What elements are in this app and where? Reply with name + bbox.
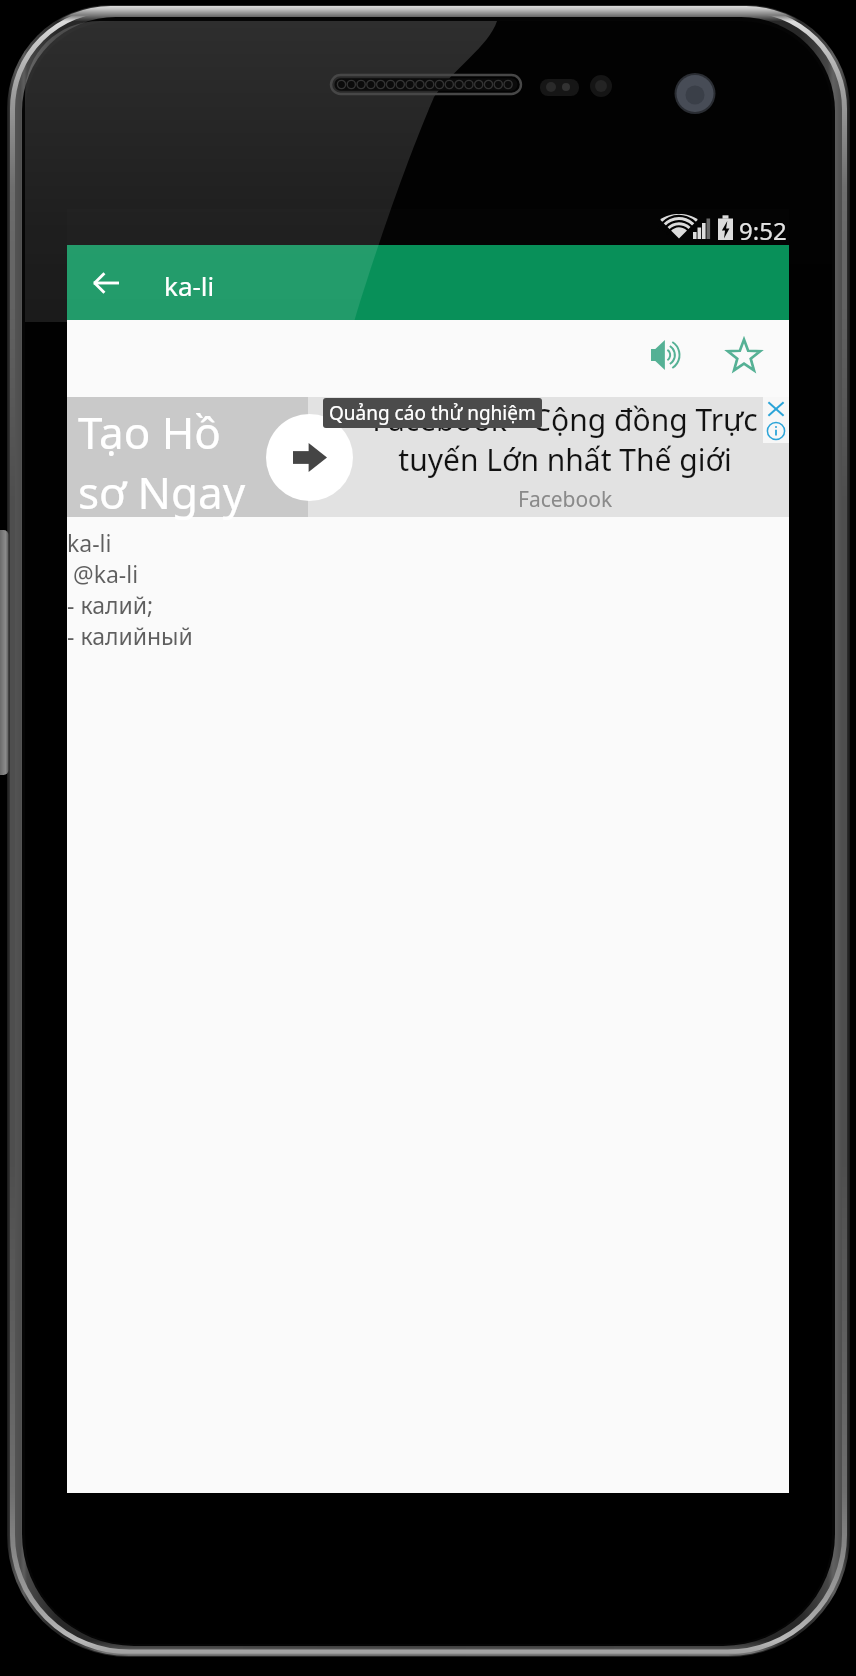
- staticText: ka-li: [67, 527, 112, 558]
- staticText: Facebook: [518, 485, 613, 514]
- staticText: - калий;: [67, 589, 154, 620]
- staticText: - калийный: [67, 620, 193, 651]
- button[interactable]: Close ad: [766, 399, 786, 419]
- button[interactable]: Pronounce: [628, 320, 706, 390]
- staticText: ka-li: [164, 268, 215, 303]
- staticText: Quảng cáo thử nghiệm: [329, 400, 536, 426]
- staticText: 9:52: [739, 214, 787, 247]
- staticText: sơ Ngay: [78, 462, 246, 522]
- button[interactable]: Add to favourites: [705, 320, 783, 390]
- button[interactable]: Ad information: [766, 421, 786, 441]
- staticText: Tạo Hồ: [78, 402, 221, 462]
- button[interactable]: Navigate up: [75, 252, 136, 313]
- staticText: Facebook - Cộng đồng Trực tuyến Lớn nhất…: [340, 399, 790, 480]
- staticText: @ka-li: [67, 558, 139, 589]
- button[interactable]: Advertisement: [67, 397, 789, 517]
